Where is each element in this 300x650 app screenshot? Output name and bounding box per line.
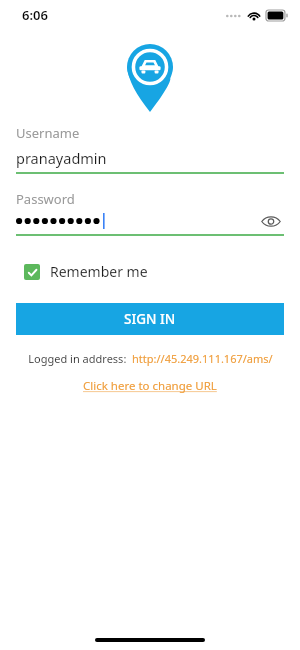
- staticText: Password: [16, 190, 75, 208]
- button[interactable]: Click here to change URL: [77, 376, 223, 396]
- staticText: Username: [16, 124, 80, 142]
- staticText: SIGN IN: [124, 310, 176, 328]
- staticText: Logged in address: http://45.249.111.167…: [28, 351, 273, 366]
- staticText: 6:06: [22, 6, 48, 24]
- button[interactable]: Show password: [258, 212, 284, 230]
- button[interactable]: Remember me: [24, 260, 156, 283]
- staticText: pranayadmin: [16, 148, 107, 168]
- staticText: Click here to change URL: [83, 378, 217, 394]
- staticText: Remember me: [50, 262, 148, 281]
- button[interactable]: SIGN IN: [16, 303, 284, 335]
